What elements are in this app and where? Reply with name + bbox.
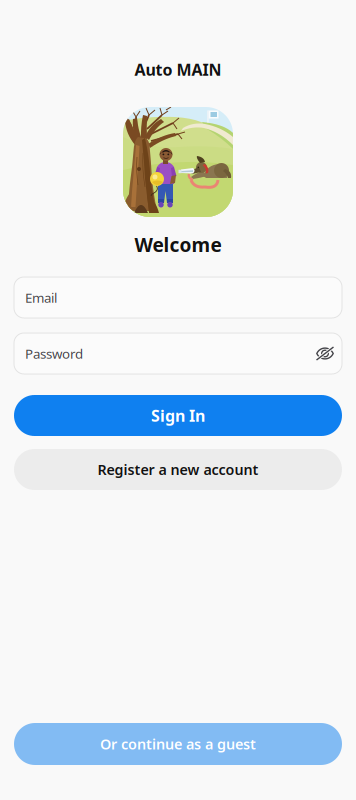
staticText: Or continue as a guest: [100, 734, 256, 754]
staticText: Email: [25, 289, 57, 306]
staticText: Welcome: [134, 231, 221, 257]
button[interactable]: Or continue as a guest: [14, 723, 342, 765]
staticText: Auto MAIN: [134, 59, 221, 80]
staticText: Register a new account: [97, 460, 258, 479]
staticText: Password: [25, 345, 83, 362]
button[interactable]: Register a new account: [14, 449, 342, 490]
staticText: Sign In: [151, 405, 205, 426]
button[interactable]: Show password: [309, 333, 341, 374]
button[interactable]: Sign In: [14, 395, 342, 436]
